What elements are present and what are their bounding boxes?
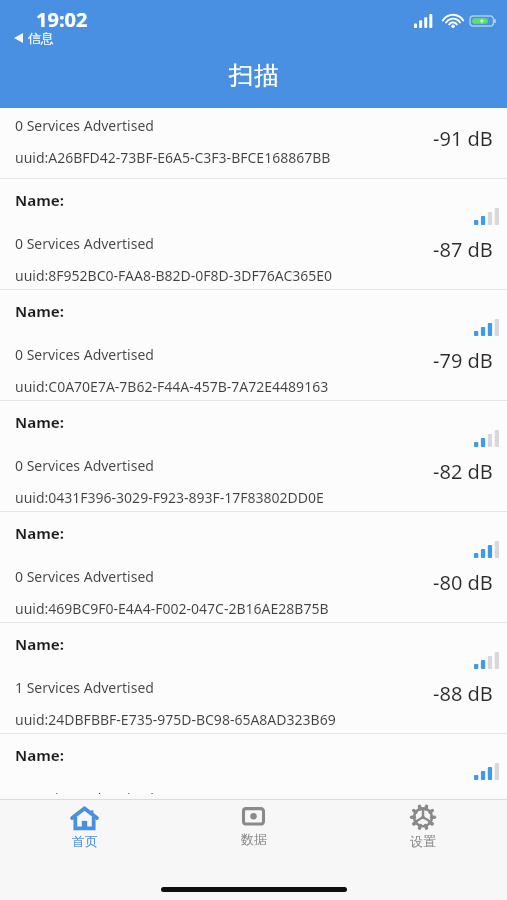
staticText: 设置 xyxy=(410,833,436,849)
staticText: 0 Services Advertised xyxy=(15,116,154,135)
staticText: uuid:24DBFBBF-E735-975D-BC98-65A8AD323B6… xyxy=(15,710,336,729)
staticText: uuid:469BC9F0-E4A4-F002-047C-2B16AE28B75… xyxy=(15,599,329,618)
staticText: Name: xyxy=(15,634,64,654)
staticText: Name: xyxy=(15,301,64,321)
staticText: Name: xyxy=(15,190,64,210)
staticText: Name: xyxy=(15,412,64,432)
button[interactable]: 0 Services Advertised xyxy=(0,108,507,179)
button[interactable]: Name: xyxy=(0,512,507,623)
button[interactable]: Name: xyxy=(0,623,507,734)
staticText: 扫描 xyxy=(229,60,279,91)
staticText: -88 dB xyxy=(433,680,493,707)
staticText: uuid:0431F396-3029-F923-893F-17F83802DD0… xyxy=(15,488,324,507)
button[interactable]: Back to 信息 xyxy=(12,29,56,47)
button[interactable]: Name: xyxy=(0,401,507,512)
staticText: -82 dB xyxy=(433,458,493,485)
staticText: Name: xyxy=(15,745,64,765)
button[interactable]: 设置 xyxy=(338,800,507,849)
staticText: uuid:C0A70E7A-7B62-F44A-457B-7A72E448916… xyxy=(15,377,329,396)
staticText: 0 Services Advertised xyxy=(15,234,154,253)
staticText: 信息 xyxy=(28,30,54,46)
staticText: uuid:8F952BC0-FAA8-B82D-0F8D-3DF76AC365E… xyxy=(15,266,333,285)
button[interactable]: 数据 xyxy=(169,800,338,847)
staticText: -87 dB xyxy=(433,236,493,263)
staticText: 0 Services Advertised xyxy=(15,345,154,364)
staticText: 0 Services Advertised xyxy=(15,789,154,794)
staticText: -79 dB xyxy=(433,347,493,374)
staticText: -80 dB xyxy=(433,569,493,596)
button[interactable]: Name: xyxy=(0,179,507,290)
button[interactable]: Name: xyxy=(0,290,507,401)
staticText: 0 Services Advertised xyxy=(15,567,154,586)
staticText: Name: xyxy=(15,523,64,543)
staticText: 19:02 xyxy=(36,6,88,33)
staticText: 0 Services Advertised xyxy=(15,456,154,475)
staticText: uuid:A26BFD42-73BF-E6A5-C3F3-BFCE168867B… xyxy=(15,148,331,167)
button[interactable]: Name: xyxy=(0,734,507,794)
staticText: 1 Services Advertised xyxy=(15,678,154,697)
staticText: 数据 xyxy=(241,831,267,847)
staticText: 首页 xyxy=(72,833,98,849)
button[interactable]: 首页 xyxy=(0,800,169,849)
staticText: -91 dB xyxy=(433,125,493,152)
